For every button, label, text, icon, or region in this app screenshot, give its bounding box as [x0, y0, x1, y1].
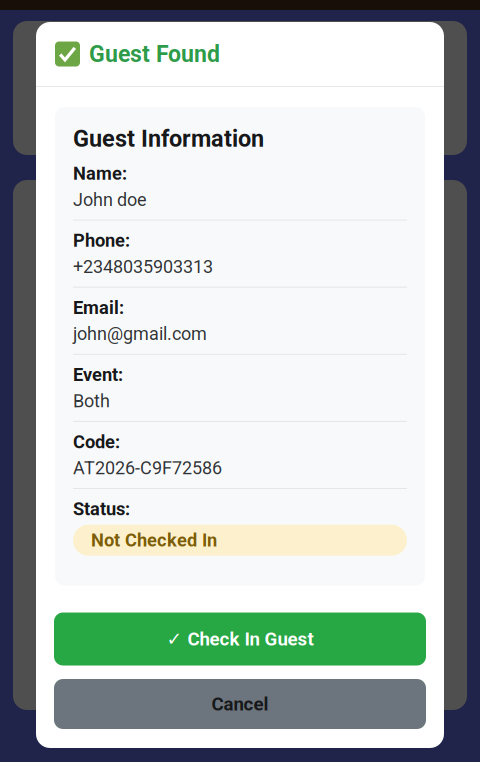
staticText: ✓ Check In Guest	[166, 628, 313, 650]
button[interactable]: ✓ Check In Guest	[54, 612, 426, 665]
staticText: Not Checked In	[91, 529, 217, 551]
staticText: Phone:	[73, 230, 130, 251]
staticText: Email:	[73, 297, 124, 318]
staticText: John doe	[73, 189, 147, 210]
staticText: Guest Found	[89, 40, 220, 67]
staticText: Cancel	[211, 693, 268, 715]
staticText: Both	[73, 390, 110, 412]
staticText: Code:	[73, 431, 120, 453]
button[interactable]: Cancel	[54, 679, 426, 729]
staticText: john@gmail.com	[73, 323, 207, 344]
staticText: Name:	[73, 163, 127, 184]
staticText: +2348035903313	[73, 256, 213, 277]
staticText: AT2026-C9F72586	[73, 458, 222, 479]
staticText: Guest Information	[73, 125, 264, 152]
staticText: Event:	[73, 364, 123, 385]
staticText: Status:	[73, 498, 130, 520]
